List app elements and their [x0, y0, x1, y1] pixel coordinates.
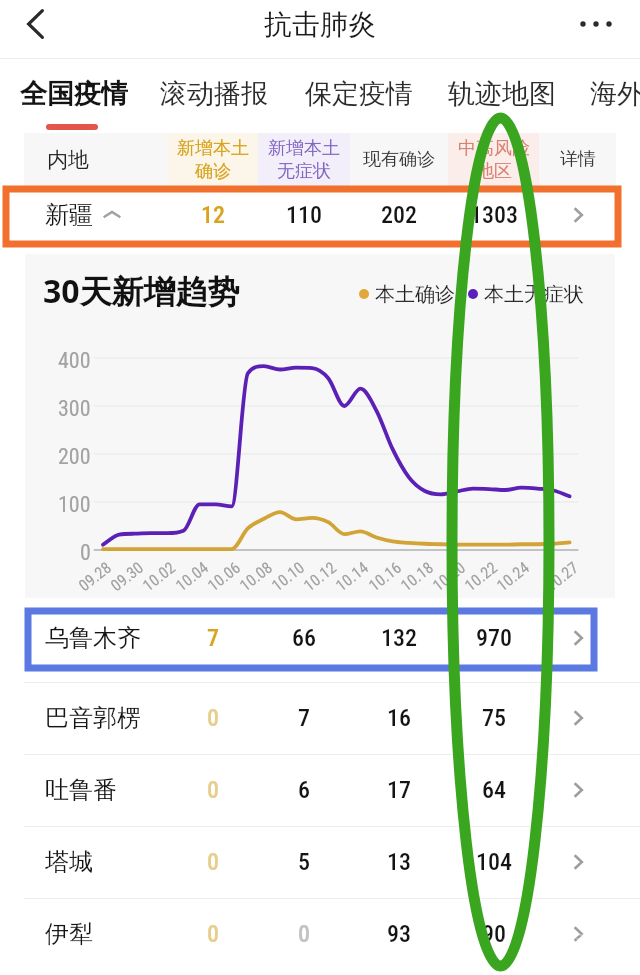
staticText: 滚动播报	[160, 77, 268, 111]
staticText: 0	[207, 848, 219, 876]
staticText: 0	[207, 920, 219, 948]
staticText: 13	[387, 848, 411, 876]
button[interactable]: 巴音郭楞	[0, 682, 640, 754]
staticText: 110	[286, 201, 322, 229]
staticText: 轨迹地图	[448, 77, 556, 111]
staticText: 10.14	[332, 558, 372, 595]
staticText: 93	[387, 920, 411, 948]
button[interactable]: 全国疫情	[6, 60, 142, 133]
staticText: 乌鲁木齐	[45, 623, 141, 653]
staticText: 100	[58, 492, 91, 518]
staticText: 10.12	[300, 558, 340, 595]
staticText: 新增本土 无症状	[268, 137, 340, 183]
button[interactable]: 内地	[24, 133, 167, 186]
staticText: 09.28	[75, 558, 115, 595]
staticText: 全国疫情	[20, 77, 128, 111]
staticText: 10.22	[461, 558, 501, 595]
staticText: 巴音郭楞	[45, 703, 141, 733]
staticText: 现有确诊	[363, 148, 435, 171]
staticText: 吐鲁番	[45, 775, 117, 805]
staticText: 5	[298, 848, 310, 876]
button[interactable]: 详情	[539, 133, 616, 186]
staticText: 10.10	[268, 558, 308, 595]
button[interactable]: Back	[2, 0, 68, 48]
staticText: 64	[482, 776, 506, 804]
staticText: 7	[207, 624, 219, 652]
staticText: 12	[201, 201, 225, 229]
button[interactable]: 新增本土 确诊	[167, 133, 258, 186]
button[interactable]: 滚动播报	[146, 60, 282, 133]
staticText: 300	[58, 396, 91, 422]
staticText: 66	[292, 624, 316, 652]
button[interactable]: 海外	[576, 60, 640, 133]
staticText: 详情	[560, 148, 596, 171]
staticText: 伊犁	[45, 919, 93, 949]
staticText: 保定疫情	[305, 77, 413, 111]
staticText: 90	[482, 920, 506, 948]
staticText: 10.18	[397, 558, 437, 595]
staticText: 7	[298, 704, 310, 732]
staticText: 10.02	[139, 558, 179, 595]
button[interactable]: More options	[562, 0, 630, 48]
staticText: 16	[387, 704, 411, 732]
staticText: 0	[207, 704, 219, 732]
staticText: 抗击肺炎	[264, 7, 376, 42]
staticText: 新增本土 确诊	[177, 137, 249, 183]
button[interactable]: 中高风险 地区	[448, 133, 539, 186]
staticText: 10.06	[204, 558, 244, 595]
staticText: 6	[298, 776, 310, 804]
staticText: 本土无症状	[484, 282, 584, 307]
staticText: 200	[58, 444, 91, 470]
button[interactable]: 轨迹地图	[434, 60, 570, 133]
staticText: 本土确诊	[375, 282, 455, 307]
staticText: 75	[482, 704, 506, 732]
button[interactable]: 现有确诊	[350, 133, 448, 186]
button[interactable]: 乌鲁木齐	[0, 607, 640, 668]
button[interactable]: 伊犁	[0, 898, 640, 970]
staticText: 0	[207, 776, 219, 804]
staticText: 970	[476, 624, 512, 652]
staticText: 10.08	[236, 558, 276, 595]
staticText: 202	[381, 201, 417, 229]
button[interactable]: 塔城	[0, 826, 640, 898]
staticText: 新疆	[45, 200, 93, 230]
staticText: 30天新增趋势	[43, 269, 240, 313]
button[interactable]: 新疆	[0, 186, 640, 244]
button[interactable]: 保定疫情	[291, 60, 427, 133]
staticText: 10.24	[493, 558, 533, 595]
staticText: 10.16	[365, 558, 405, 595]
staticText: 0	[80, 540, 91, 566]
staticText: 10.04	[172, 558, 212, 595]
staticText: 17	[387, 776, 411, 804]
button[interactable]: 吐鲁番	[0, 754, 640, 826]
staticText: 10.20	[429, 558, 469, 595]
staticText: 中高风险 地区	[458, 137, 530, 183]
staticText: 头条 @灵小妹儿	[500, 930, 640, 960]
staticText: 内地	[47, 147, 89, 173]
button[interactable]: 新增本土 无症状	[258, 133, 350, 186]
staticText: 132	[381, 624, 417, 652]
staticText: 海外	[590, 77, 640, 111]
staticText: 1303	[470, 201, 518, 229]
staticText: 09.30	[107, 558, 147, 595]
staticText: 塔城	[45, 847, 93, 877]
staticText: 10.27	[542, 558, 582, 595]
staticText: 400	[58, 348, 91, 374]
staticText: 104	[476, 848, 512, 876]
staticText: 0	[298, 920, 310, 948]
